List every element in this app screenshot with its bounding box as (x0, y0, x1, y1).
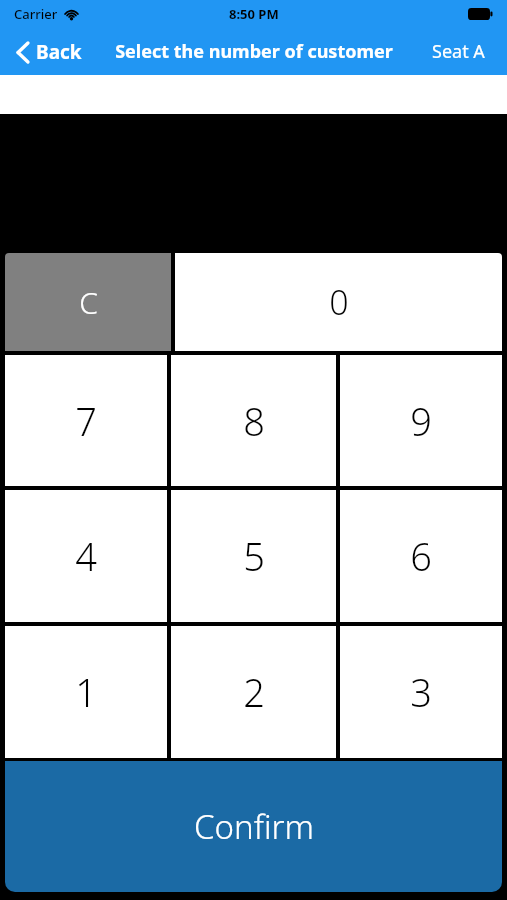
staticText: 6 (410, 530, 432, 582)
staticText: 3 (410, 666, 432, 718)
staticText: 8:50 PM (229, 5, 279, 23)
button[interactable]: 0 (175, 253, 502, 351)
staticText: Carrier (14, 5, 58, 23)
button[interactable]: Back (16, 39, 82, 65)
staticText: 4 (75, 530, 97, 582)
button[interactable]: 2 (171, 626, 336, 758)
button[interactable]: C (5, 253, 171, 351)
staticText: Back (36, 39, 82, 65)
staticText: 2 (243, 666, 265, 718)
staticText: 5 (243, 530, 265, 582)
button[interactable]: 9 (340, 355, 502, 486)
button[interactable]: 3 (340, 626, 502, 758)
button[interactable]: 5 (171, 490, 336, 622)
staticText: 1 (75, 666, 97, 718)
staticText: 7 (75, 395, 97, 447)
staticText: Confirm (194, 804, 314, 849)
button[interactable]: 7 (5, 355, 167, 486)
button[interactable]: 4 (5, 490, 167, 622)
staticText: C (79, 282, 98, 323)
staticText: Seat A (432, 39, 485, 64)
staticText: 8 (243, 395, 265, 447)
button[interactable]: Confirm (5, 761, 502, 892)
staticText: 9 (410, 395, 432, 447)
button[interactable]: 6 (340, 490, 502, 622)
button[interactable]: Seat A (432, 39, 485, 64)
button[interactable]: 1 (5, 626, 167, 758)
staticText: Select the number of customer (115, 39, 393, 64)
button[interactable]: 8 (171, 355, 336, 486)
staticText: 0 (329, 279, 349, 325)
